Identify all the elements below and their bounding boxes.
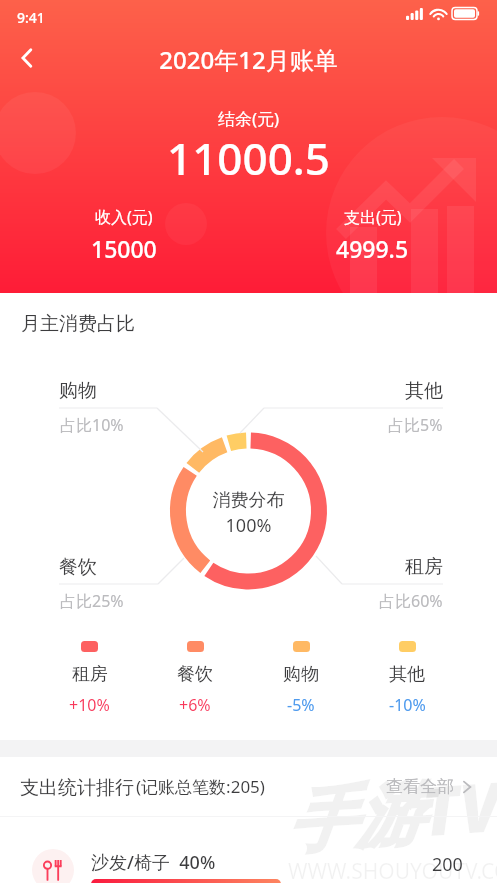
staticText: 其他 (389, 663, 425, 686)
staticText: 租房 (72, 663, 108, 686)
button[interactable]: 购物 (248, 641, 354, 716)
staticText: 支出(元) (344, 206, 402, 228)
staticText: 4999.5 (336, 233, 409, 264)
staticText: 收入(元) (95, 206, 153, 228)
staticText: 其他 (405, 379, 443, 403)
staticText: -5% (287, 694, 315, 716)
staticText: 占比60% (379, 590, 443, 612)
button[interactable]: 查看全部 (386, 776, 474, 797)
staticText: +10% (69, 694, 110, 716)
staticText: 月主消费占比 (21, 312, 135, 336)
staticText: 购物 (283, 663, 319, 686)
staticText: 餐饮 (177, 663, 213, 686)
button[interactable]: 沙发/椅子 40% (0, 817, 497, 883)
staticText: 租房 (405, 555, 443, 579)
staticText: 支出统计排行 (20, 776, 134, 800)
staticText: 100% (0, 513, 497, 538)
staticText: 餐饮 (59, 555, 97, 579)
staticText: -10% (389, 694, 426, 716)
staticText: 200 (432, 852, 463, 877)
staticText: 沙发/椅子 40% (91, 850, 216, 875)
staticText: (记账总笔数:205) (136, 775, 265, 798)
button[interactable]: 餐饮 (142, 641, 248, 716)
staticText: 消费分布 (0, 489, 497, 512)
staticText: 占比25% (60, 590, 124, 612)
staticText: 查看全部 (386, 776, 454, 797)
staticText: 结余(元) (0, 107, 497, 130)
staticText: 2020年12月账单 (0, 43, 497, 76)
button[interactable]: Back (0, 36, 54, 80)
staticText: 占比10% (60, 414, 124, 436)
button[interactable]: 租房 (37, 641, 142, 716)
staticText: 11000.5 (0, 128, 497, 188)
staticText: +6% (179, 694, 211, 716)
staticText: WWW.SHOUYOUTV.COM (288, 857, 497, 883)
staticText: 手游TV (283, 758, 497, 866)
staticText: 占比5% (388, 414, 443, 436)
staticText: 9:41 (17, 8, 45, 27)
staticText: 购物 (59, 379, 97, 403)
staticText: 15000 (91, 233, 157, 264)
button[interactable]: 其他 (354, 641, 460, 716)
